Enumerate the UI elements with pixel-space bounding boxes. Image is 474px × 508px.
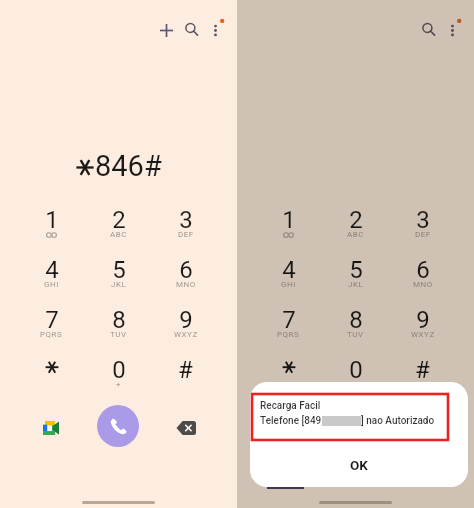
staticText: MNO (176, 280, 196, 289)
button[interactable] (255, 356, 322, 406)
button[interactable]: Call (97, 405, 139, 447)
staticText: 9 (179, 306, 193, 330)
staticText: 4 (45, 256, 59, 280)
staticText: JKL (348, 280, 364, 289)
button[interactable]: Video call (33, 410, 69, 446)
staticText: 3 (179, 206, 193, 230)
staticText: 6 (416, 256, 430, 280)
staticText: TUV (347, 330, 364, 339)
staticText: MNO (413, 280, 433, 289)
staticText: JKL (111, 280, 127, 289)
button[interactable]: 3 (389, 206, 456, 256)
staticText: 1 (45, 206, 59, 230)
button[interactable]: 1 (255, 206, 322, 256)
staticText: TUV (110, 330, 127, 339)
staticText: 2 (112, 206, 126, 230)
button[interactable]: 0 (85, 356, 152, 406)
staticText: + (116, 380, 122, 389)
staticText: ABC (347, 230, 364, 239)
button[interactable]: 0 (322, 356, 389, 406)
staticText: 5 (112, 256, 126, 280)
staticText: PQRS (277, 330, 300, 339)
button[interactable]: # (152, 356, 219, 406)
staticText: 6 (179, 256, 193, 280)
button[interactable]: Video call (270, 410, 306, 446)
button[interactable]: 2 (322, 206, 389, 256)
button[interactable]: 8 (85, 306, 152, 356)
button[interactable]: Backspace (168, 410, 204, 446)
button[interactable]: OK (250, 450, 468, 480)
staticText: 0 (112, 356, 126, 380)
staticText: Recarga Facil (260, 400, 321, 412)
button[interactable]: 9 (389, 306, 456, 356)
staticText: 9 (416, 306, 430, 330)
button[interactable]: 2 (85, 206, 152, 256)
button[interactable] (18, 356, 85, 406)
staticText: 1 (282, 206, 296, 230)
button[interactable]: 4 (255, 256, 322, 306)
button[interactable]: Call (334, 405, 376, 447)
button[interactable]: 6 (389, 256, 456, 306)
staticText: WXYZ (174, 330, 198, 339)
button[interactable]: 5 (322, 256, 389, 306)
button[interactable]: More options (440, 14, 466, 40)
staticText: + (353, 380, 359, 389)
button[interactable]: 1 (18, 206, 85, 256)
staticText: 8 (349, 306, 363, 330)
button[interactable]: 8 (322, 306, 389, 356)
staticText: Telefone [849 (260, 415, 322, 427)
button[interactable]: Search (414, 15, 443, 44)
button[interactable]: 7 (255, 306, 322, 356)
button[interactable]: 7 (18, 306, 85, 356)
staticText: GHI (281, 280, 296, 289)
staticText: 3 (416, 206, 430, 230)
button[interactable]: 3 (152, 206, 219, 256)
button[interactable]: 4 (18, 256, 85, 306)
staticText: 4 (282, 256, 296, 280)
staticText: 7 (45, 306, 59, 330)
staticText: DEF (415, 230, 431, 239)
staticText: ] nao Autorizado (361, 415, 435, 427)
button[interactable]: Search (177, 15, 206, 44)
button[interactable]: 9 (152, 306, 219, 356)
button[interactable]: 6 (152, 256, 219, 306)
button[interactable]: More options (203, 14, 229, 40)
staticText: 5 (349, 256, 363, 280)
staticText: 7 (282, 306, 296, 330)
staticText: PQRS (40, 330, 63, 339)
button[interactable]: 5 (85, 256, 152, 306)
staticText: 0 (349, 356, 363, 380)
staticText: 2 (349, 206, 363, 230)
button[interactable]: # (389, 356, 456, 406)
button[interactable]: Backspace (405, 410, 441, 446)
staticText: ABC (110, 230, 127, 239)
staticText: WXYZ (411, 330, 435, 339)
button[interactable]: New contact (152, 16, 181, 45)
staticText: # (415, 356, 430, 380)
staticText: DEF (178, 230, 194, 239)
staticText: OK (350, 457, 368, 473)
staticText: GHI (44, 280, 59, 289)
staticText: # (178, 356, 193, 380)
staticText: 846# (95, 149, 162, 183)
staticText: 8 (112, 306, 126, 330)
